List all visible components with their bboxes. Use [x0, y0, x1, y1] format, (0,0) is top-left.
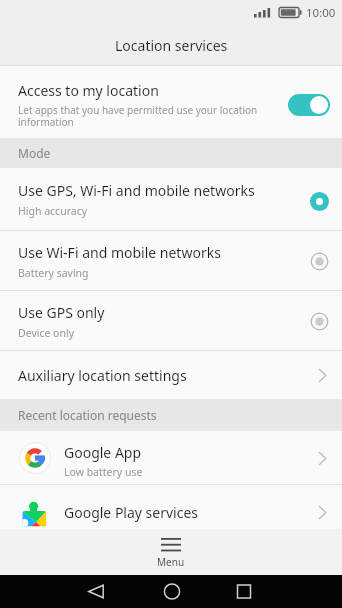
staticText: Location services	[115, 36, 228, 55]
button[interactable]: Google Play services	[0, 485, 342, 529]
button[interactable]: Auxiliary location settings	[0, 351, 342, 399]
staticText: Google App	[64, 443, 142, 462]
button[interactable]	[228, 575, 342, 608]
button[interactable]	[288, 94, 330, 116]
button[interactable]: Google App	[0, 431, 342, 485]
staticText: Use GPS only	[18, 303, 105, 322]
staticText: Menu	[157, 555, 185, 569]
staticText: Device only	[18, 326, 75, 340]
staticText: 10:00	[306, 5, 336, 21]
button[interactable]	[0, 575, 114, 608]
staticText: Low battery use	[64, 465, 143, 479]
staticText: Mode	[18, 145, 51, 161]
staticText: Battery saving	[18, 266, 89, 280]
button[interactable]: Use GPS only	[0, 291, 342, 351]
button[interactable]: Use GPS, Wi-Fi and mobile networks	[0, 168, 342, 231]
staticText: Let apps that you have permitted use you…	[18, 103, 258, 129]
staticText: Use Wi-Fi and mobile networks	[18, 243, 221, 262]
staticText: High accuracy	[18, 204, 88, 218]
staticText: Use GPS, Wi-Fi and mobile networks	[18, 181, 255, 200]
button[interactable]	[114, 575, 228, 608]
button[interactable]: Menu	[0, 529, 342, 575]
button[interactable]: Use Wi-Fi and mobile networks	[0, 231, 342, 291]
staticText: Access to my location	[18, 81, 159, 100]
staticText: Auxiliary location settings	[18, 366, 318, 385]
staticText: Google Play services	[64, 503, 199, 522]
staticText: Recent location requests	[18, 407, 157, 423]
button[interactable]: Access to my location	[0, 66, 342, 138]
